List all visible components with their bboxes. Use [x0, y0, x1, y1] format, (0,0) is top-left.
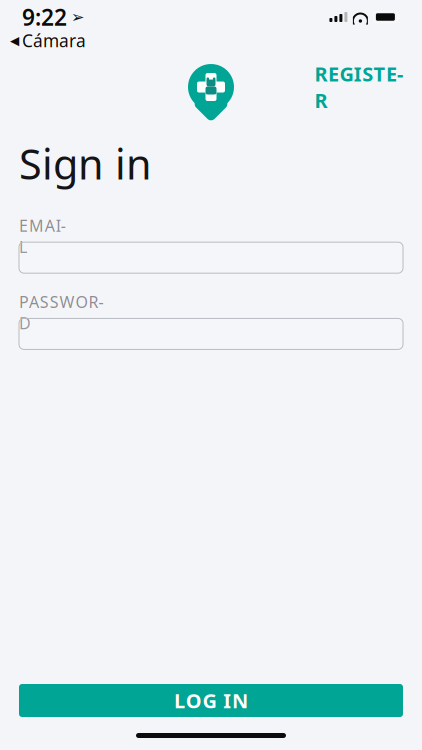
button[interactable]: LOG IN	[19, 684, 403, 717]
button[interactable]: REGISTER	[305, 52, 413, 122]
staticText: Cámara	[22, 29, 86, 52]
button[interactable]: EMAIL	[19, 242, 403, 273]
staticText: Sign in	[19, 136, 152, 191]
staticText: ➢	[71, 8, 84, 26]
staticText: 9:22	[22, 2, 67, 32]
staticText: ◀	[10, 34, 19, 47]
staticText: REGISTER	[315, 60, 403, 114]
staticText: LOG IN	[174, 687, 248, 714]
button[interactable]: PASSWORD	[19, 318, 403, 349]
staticText: EMAIL	[19, 215, 70, 236]
staticText: PASSWORD	[19, 291, 111, 312]
button[interactable]: ◀	[0, 28, 94, 54]
